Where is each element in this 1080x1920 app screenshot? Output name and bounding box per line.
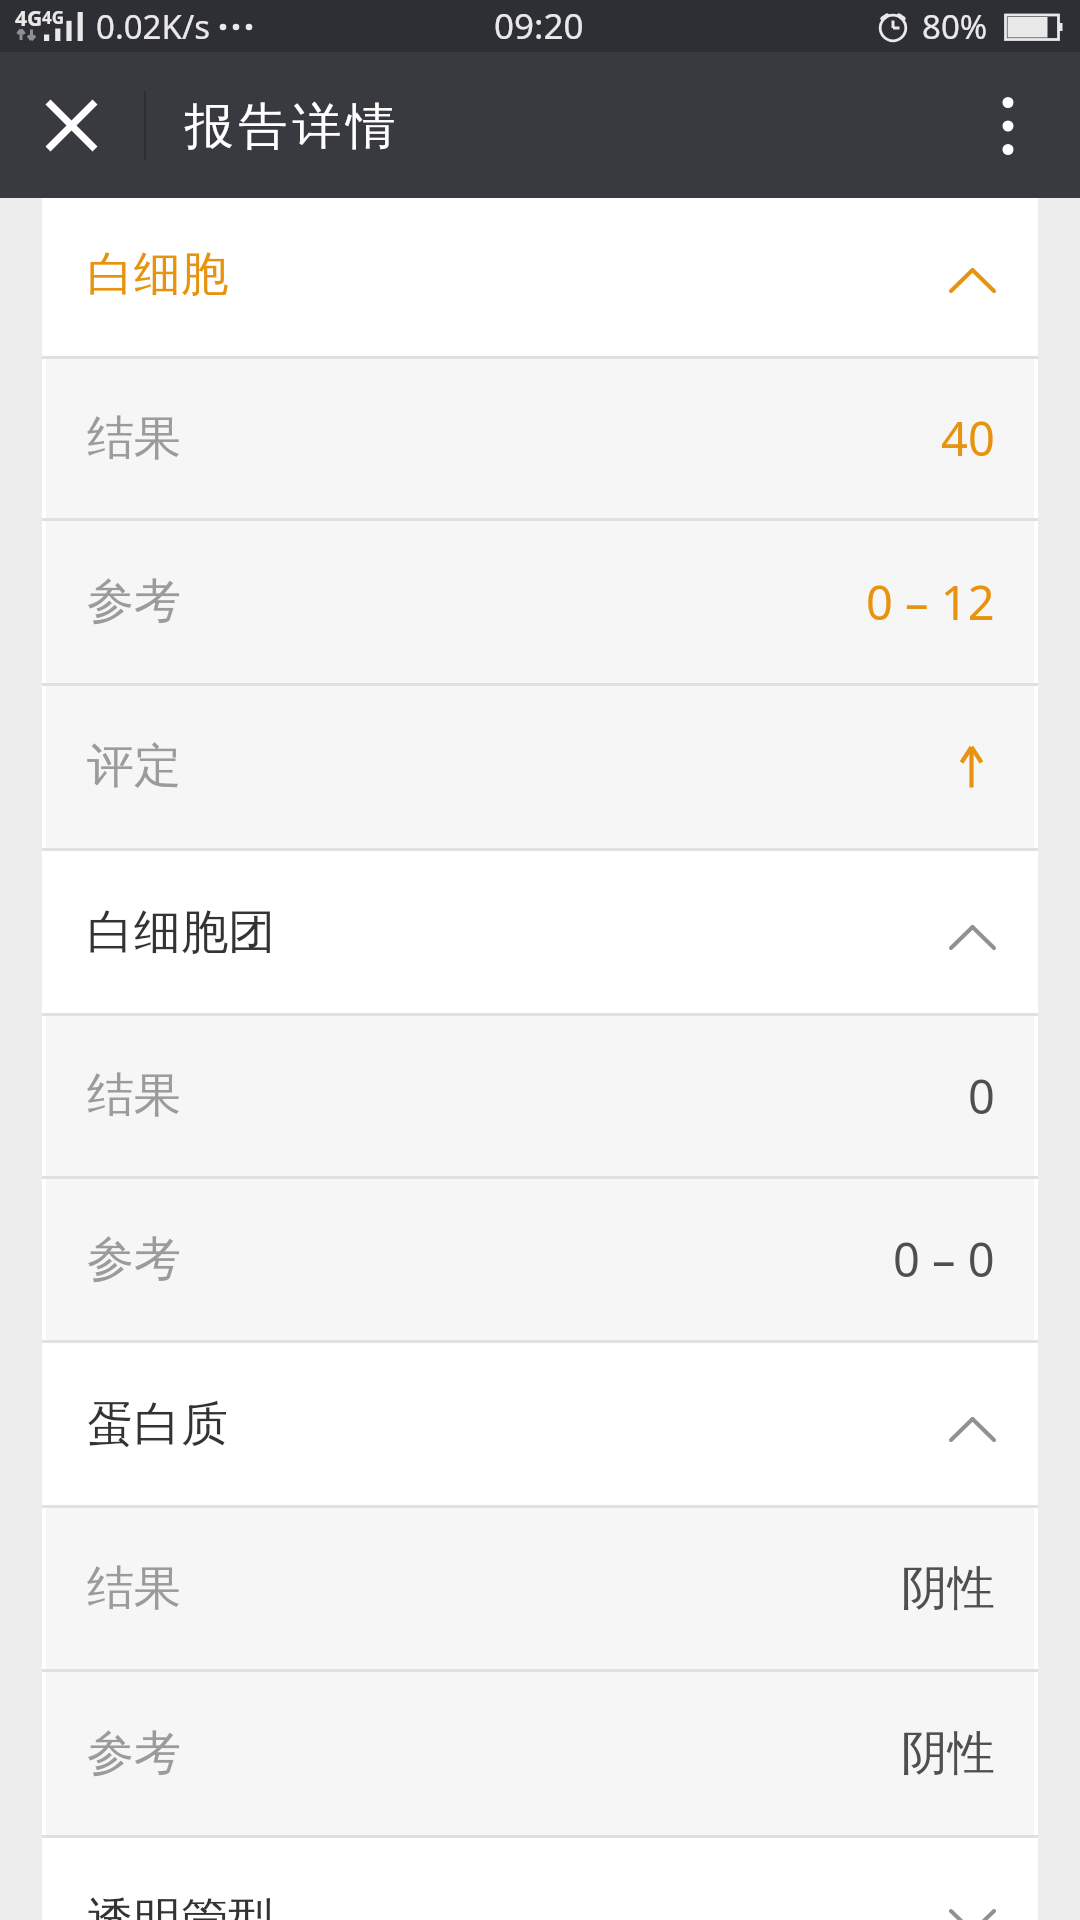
staticText: 结果 (87, 1066, 181, 1125)
button[interactable]: 结果 (42, 1508, 1038, 1672)
staticText: 0.02K/s (96, 4, 210, 49)
button[interactable]: 参考 (42, 521, 1038, 686)
staticText: 白细胞 (87, 245, 228, 304)
button[interactable]: 结果 (42, 1016, 1038, 1179)
staticText: 结果 (87, 1559, 181, 1618)
staticText: 阴性 (901, 1559, 995, 1618)
staticText: 80% (922, 4, 988, 49)
staticText: 蛋白质 (87, 1395, 228, 1454)
button[interactable]: 评定 (42, 686, 1038, 851)
staticText: 白细胞团 (87, 903, 275, 962)
staticText: 0 – 0 (893, 1227, 995, 1291)
staticText: 0 (968, 1064, 995, 1128)
staticText: 参考 (87, 1230, 181, 1289)
staticText: 4G (15, 4, 43, 33)
button[interactable]: 透明管型 (42, 1838, 1038, 1920)
staticText: 09:20 (494, 2, 584, 50)
staticText: 透明管型 (87, 1891, 275, 1920)
staticText: 阴性 (901, 1724, 995, 1783)
button[interactable]: Close (24, 78, 118, 172)
staticText: 参考 (87, 572, 181, 631)
button[interactable]: 参考 (42, 1179, 1038, 1343)
button[interactable]: 蛋白质 (42, 1343, 1038, 1508)
button[interactable]: 参考 (42, 1672, 1038, 1838)
staticText: 参考 (87, 1724, 181, 1783)
staticText: 40 (941, 406, 995, 470)
button[interactable]: 白细胞 (42, 198, 1038, 359)
staticText: 结果 (87, 409, 181, 468)
button[interactable]: 结果 (42, 359, 1038, 521)
staticText: 评定 (87, 737, 181, 796)
staticText: 4G (42, 6, 65, 29)
staticText: 0 – 12 (866, 570, 995, 634)
button[interactable]: 白细胞团 (42, 851, 1038, 1016)
staticText: 报告详情 (182, 96, 398, 158)
button[interactable]: More options (961, 78, 1055, 172)
